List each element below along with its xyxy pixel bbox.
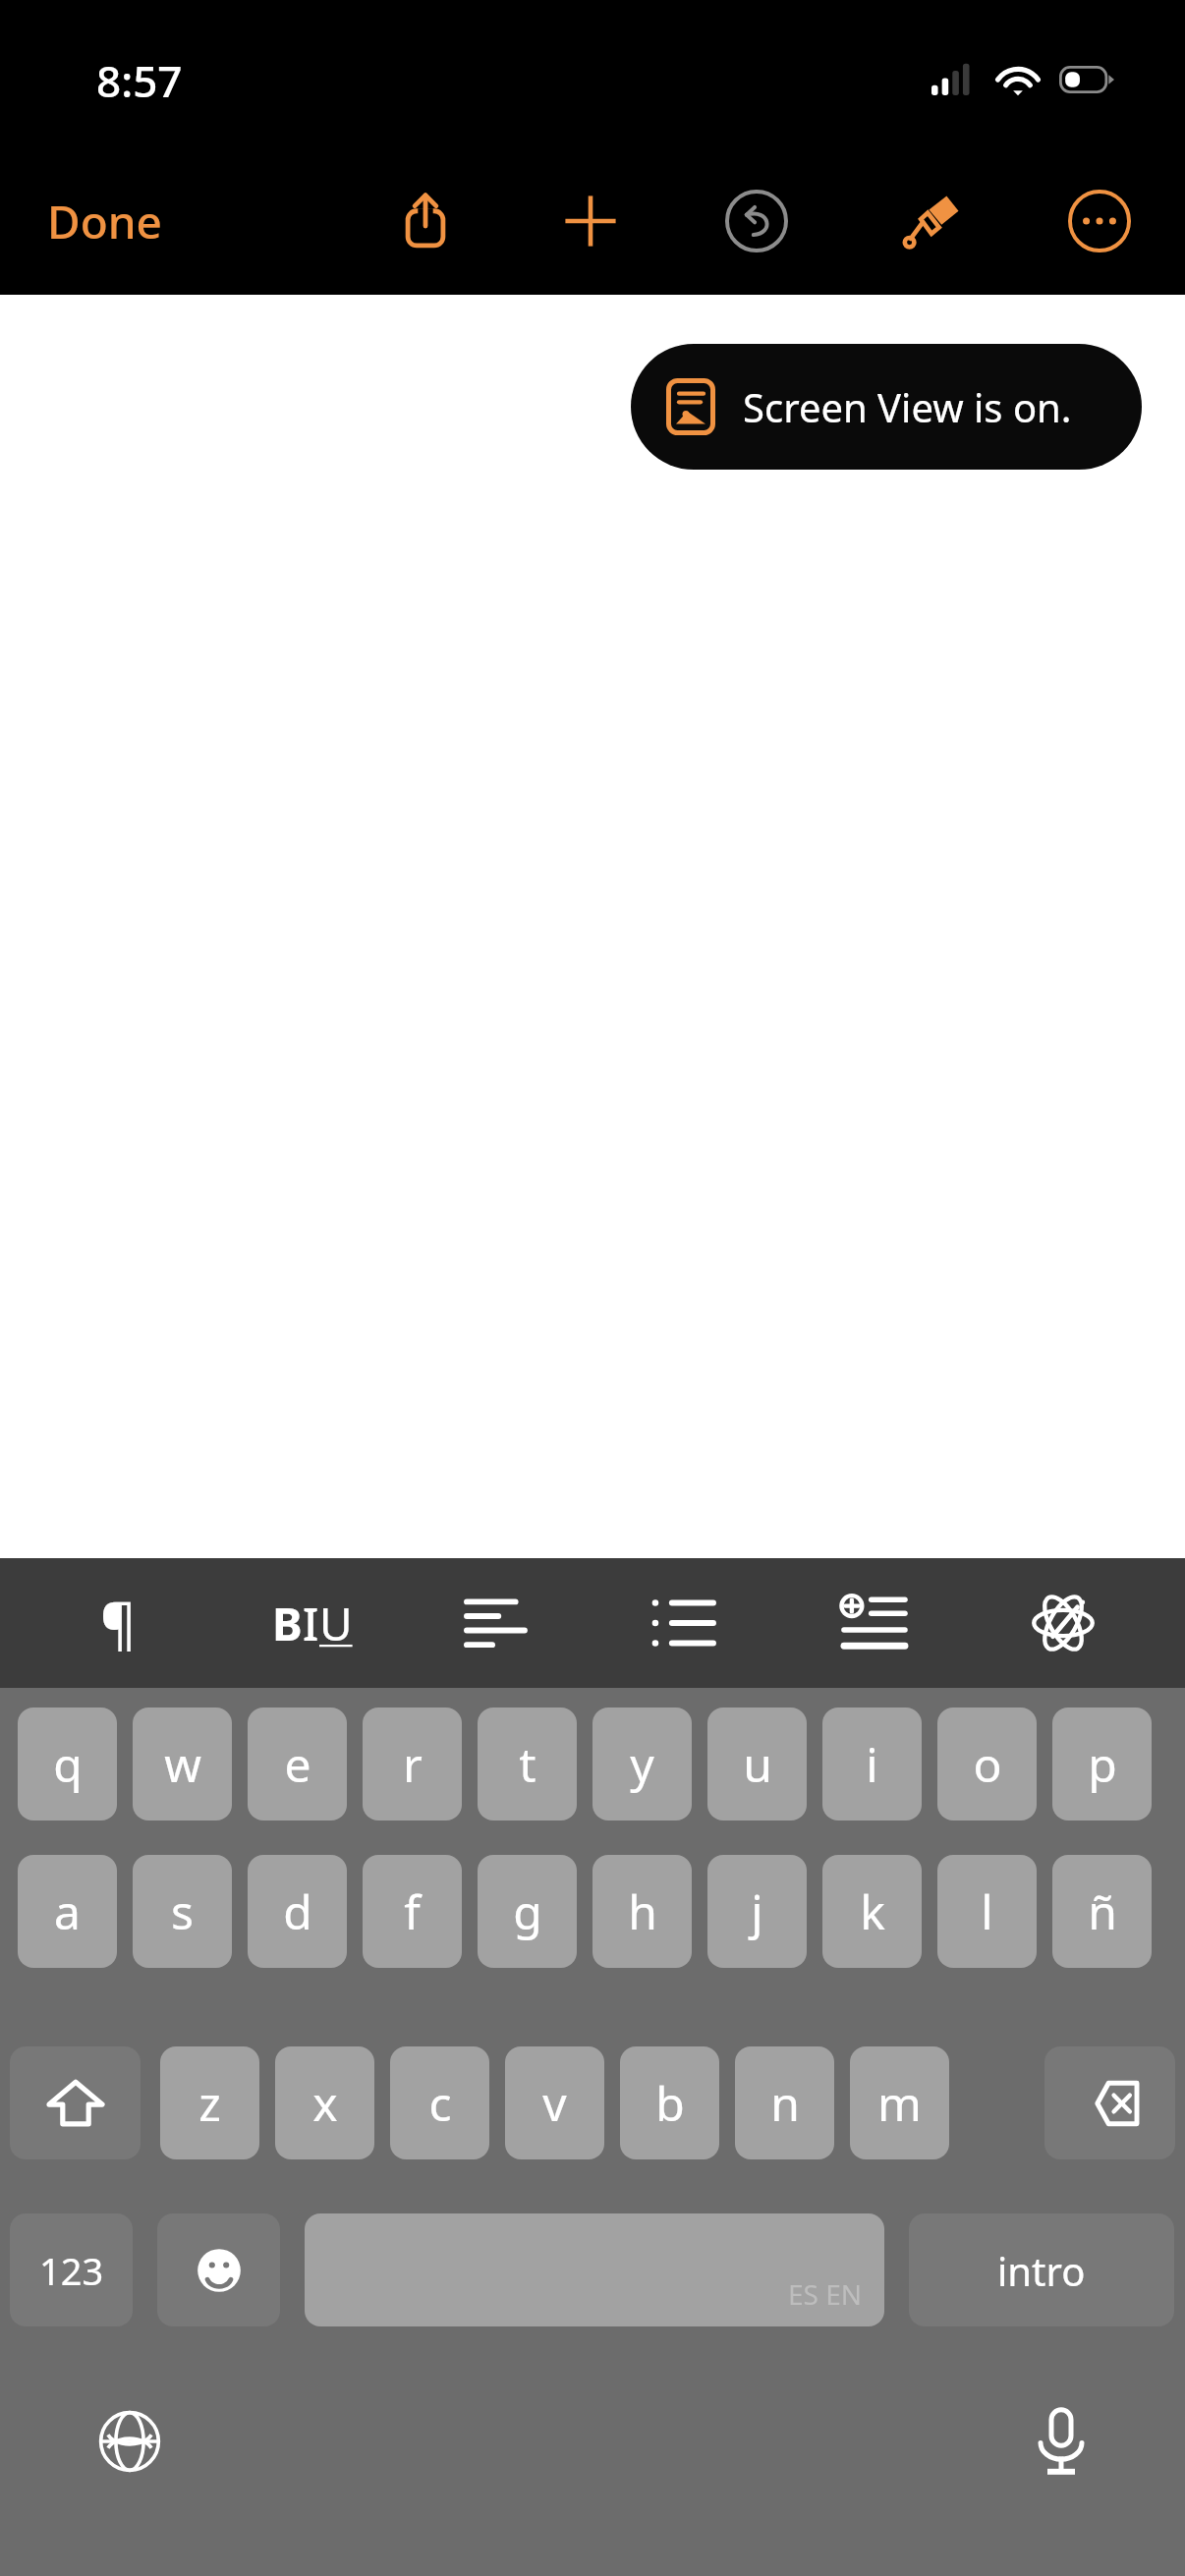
staticText: s: [171, 1879, 194, 1943]
staticText: n: [770, 2071, 800, 2135]
button[interactable]: x: [275, 2046, 374, 2159]
staticText: g: [513, 1879, 542, 1943]
staticText: U: [319, 1593, 353, 1654]
button[interactable]: More options: [1052, 174, 1147, 268]
button[interactable]: Screen View is on.: [631, 344, 1142, 470]
button[interactable]: 123: [10, 2213, 133, 2326]
button[interactable]: y: [592, 1708, 692, 1820]
staticText: y: [630, 1732, 654, 1796]
button[interactable]: Done: [35, 177, 174, 266]
button[interactable]: m: [850, 2046, 949, 2159]
button[interactable]: Markup: [884, 174, 979, 268]
button[interactable]: intro: [909, 2213, 1174, 2326]
button[interactable]: d: [248, 1855, 347, 1968]
button[interactable]: r: [363, 1708, 462, 1820]
button[interactable]: t: [478, 1708, 577, 1820]
button[interactable]: ñ: [1052, 1855, 1152, 1968]
button[interactable]: f: [363, 1855, 462, 1968]
button[interactable]: ES EN: [305, 2213, 884, 2326]
button[interactable]: n: [735, 2046, 834, 2159]
button[interactable]: Share: [378, 174, 473, 268]
staticText: d: [283, 1879, 312, 1943]
button[interactable]: h: [592, 1855, 692, 1968]
staticText: m: [877, 2071, 922, 2135]
staticText: l: [981, 1879, 993, 1943]
button[interactable]: Add: [543, 174, 638, 268]
button[interactable]: Markup: [1004, 1564, 1122, 1682]
staticText: Screen View is on.: [743, 380, 1072, 433]
staticText: a: [54, 1879, 81, 1943]
staticText: v: [542, 2071, 567, 2135]
staticText: intro: [997, 2244, 1086, 2297]
staticText: u: [743, 1732, 772, 1796]
button[interactable]: Bold italic underline: [254, 1564, 371, 1682]
staticText: 8:57: [96, 51, 183, 110]
staticText: c: [428, 2071, 452, 2135]
staticText: b: [655, 2071, 685, 2135]
button[interactable]: g: [478, 1855, 577, 1968]
staticText: B: [272, 1593, 303, 1654]
button[interactable]: Change keyboard: [79, 2390, 181, 2492]
staticText: ¶: [100, 1586, 137, 1660]
staticText: Done: [47, 191, 162, 252]
button[interactable]: k: [822, 1855, 922, 1968]
staticText: q: [53, 1732, 83, 1796]
button[interactable]: Dictate: [1010, 2390, 1112, 2492]
button[interactable]: q: [18, 1708, 117, 1820]
button[interactable]: b: [620, 2046, 719, 2159]
button[interactable]: p: [1052, 1708, 1152, 1820]
staticText: e: [284, 1732, 311, 1796]
button[interactable]: Indent: [814, 1564, 931, 1682]
button[interactable]: List: [624, 1564, 742, 1682]
staticText: z: [198, 2071, 221, 2135]
button[interactable]: w: [133, 1708, 232, 1820]
staticText: p: [1088, 1732, 1117, 1796]
staticText: r: [403, 1732, 423, 1796]
staticText: h: [628, 1879, 657, 1943]
staticText: i: [866, 1732, 878, 1796]
staticText: ES EN: [788, 2275, 863, 2313]
staticText: I: [303, 1593, 319, 1654]
button[interactable]: Backspace: [1044, 2046, 1175, 2159]
staticText: 123: [39, 2245, 104, 2296]
button[interactable]: j: [707, 1855, 807, 1968]
button[interactable]: u: [707, 1708, 807, 1820]
button[interactable]: o: [937, 1708, 1037, 1820]
button[interactable]: Emoji: [157, 2213, 280, 2326]
staticText: w: [164, 1732, 201, 1796]
staticText: k: [860, 1879, 885, 1943]
button[interactable]: Undo: [709, 174, 804, 268]
button[interactable]: i: [822, 1708, 922, 1820]
button[interactable]: v: [505, 2046, 604, 2159]
staticText: j: [751, 1879, 763, 1943]
button[interactable]: z: [160, 2046, 259, 2159]
button[interactable]: Paragraph style: [59, 1564, 177, 1682]
button[interactable]: e: [248, 1708, 347, 1820]
staticText: x: [312, 2071, 338, 2135]
button[interactable]: c: [390, 2046, 489, 2159]
button[interactable]: Shift: [10, 2046, 141, 2159]
button[interactable]: l: [937, 1855, 1037, 1968]
staticText: ñ: [1088, 1879, 1117, 1943]
button[interactable]: a: [18, 1855, 117, 1968]
staticText: t: [519, 1732, 536, 1796]
staticText: f: [404, 1879, 421, 1943]
staticText: o: [973, 1732, 1002, 1796]
button[interactable]: s: [133, 1855, 232, 1968]
button[interactable]: Align: [438, 1564, 556, 1682]
